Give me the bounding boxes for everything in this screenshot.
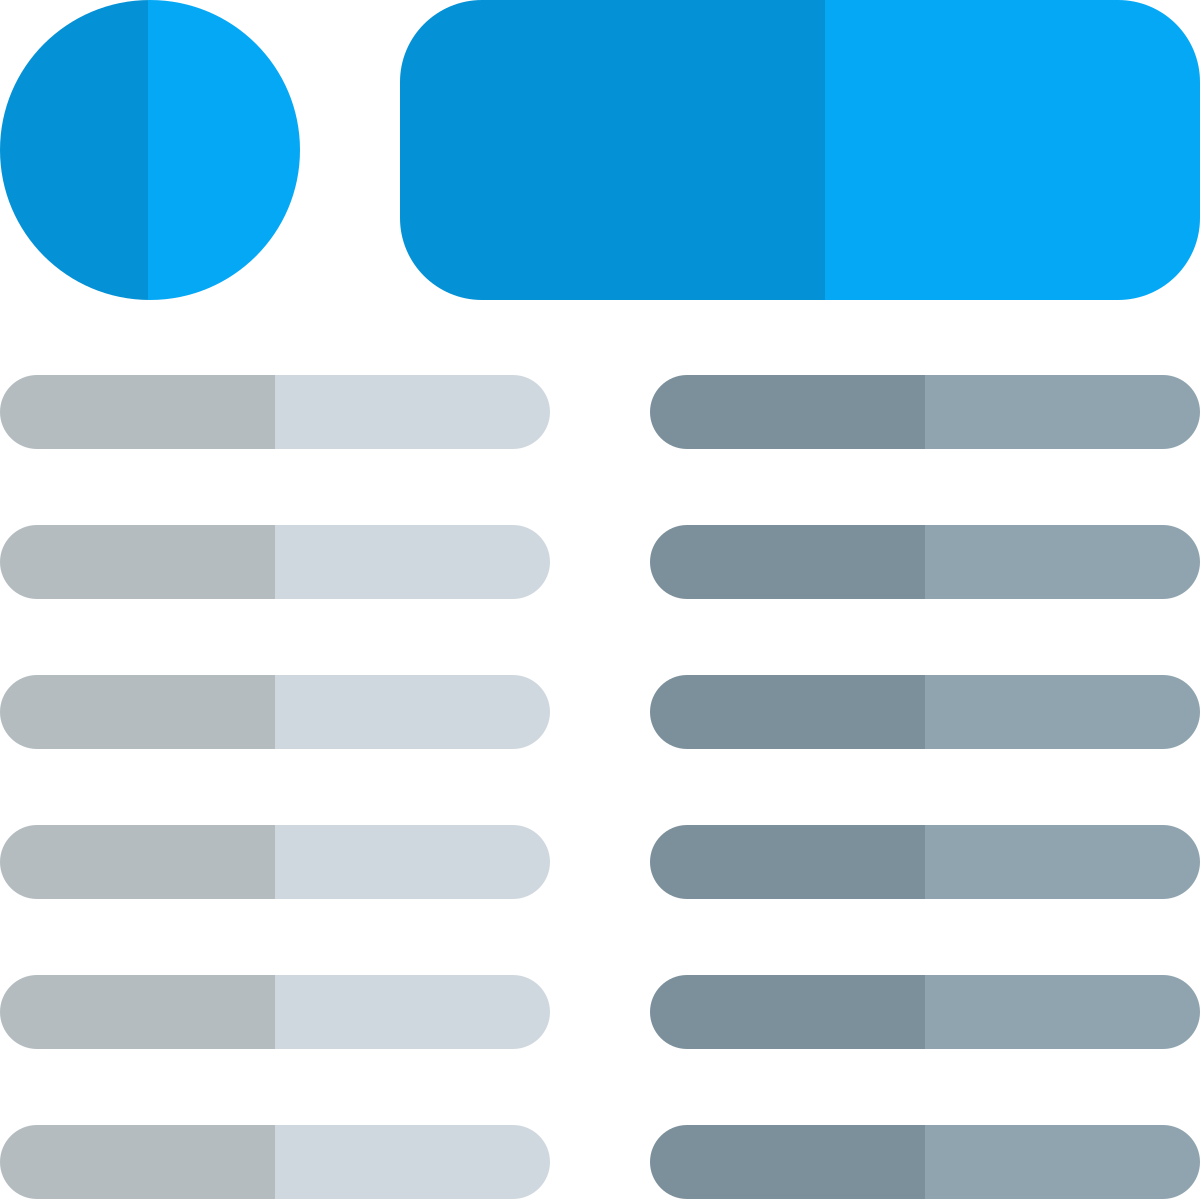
button[interactable]: Detail 3 (650, 675, 1200, 749)
button[interactable]: Item 5 (0, 975, 550, 1049)
button[interactable]: Detail 4 (650, 825, 1200, 899)
button[interactable]: Banner (400, 0, 1200, 300)
button[interactable]: Item 1 (0, 375, 550, 449)
button[interactable]: Item 6 (0, 1125, 550, 1199)
button[interactable]: Detail 1 (650, 375, 1200, 449)
button[interactable]: Item 2 (0, 525, 550, 599)
button[interactable]: Avatar (0, 0, 300, 300)
button[interactable]: Detail 5 (650, 975, 1200, 1049)
button[interactable]: Detail 2 (650, 525, 1200, 599)
button[interactable]: Item 3 (0, 675, 550, 749)
button[interactable]: Item 4 (0, 825, 550, 899)
button[interactable]: Detail 6 (650, 1125, 1200, 1199)
